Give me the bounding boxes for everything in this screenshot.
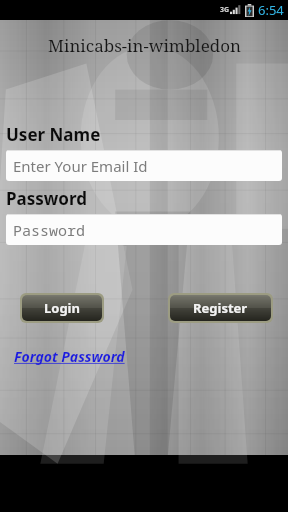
staticText: Password xyxy=(13,220,86,240)
button[interactable]: User Name xyxy=(6,123,101,146)
button[interactable]: Password xyxy=(6,214,282,245)
button[interactable]: Password xyxy=(6,187,87,210)
button[interactable]: Register xyxy=(168,293,273,323)
staticText: 6:54 xyxy=(258,1,284,19)
staticText: Login xyxy=(44,299,80,317)
staticText: 3G xyxy=(220,5,230,15)
button[interactable]: Enter Your Email Id xyxy=(6,150,282,181)
staticText: Minicabs-in-wimbledon xyxy=(48,34,241,57)
staticText: Register xyxy=(193,299,248,317)
staticText: Enter Your Email Id xyxy=(13,156,148,176)
button[interactable]: Login xyxy=(20,293,104,323)
button[interactable]: Forgot Password xyxy=(14,347,125,366)
